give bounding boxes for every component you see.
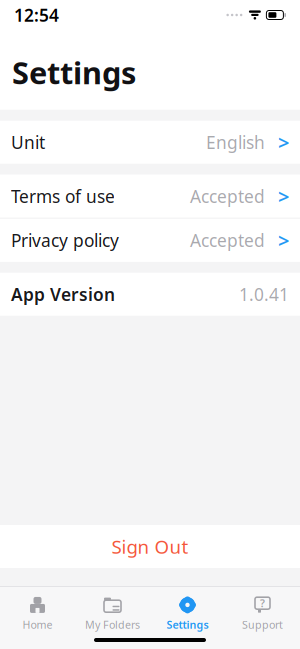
staticText: ?	[260, 596, 265, 610]
staticText: Support	[242, 617, 283, 632]
staticText: >	[278, 183, 289, 209]
button[interactable]: My Folders	[75, 595, 150, 633]
staticText: Privacy policy	[11, 229, 119, 252]
staticText: Terms of use	[11, 185, 115, 208]
staticText: Settings	[12, 52, 136, 93]
button[interactable]: ?	[225, 595, 300, 633]
staticText: 12:54	[14, 3, 59, 26]
staticText: Unit	[11, 131, 45, 154]
staticText: Home	[22, 617, 52, 632]
button[interactable]: Terms of use	[0, 175, 300, 218]
staticText: Accepted	[190, 229, 265, 252]
staticText: Sign Out	[111, 534, 188, 559]
staticText: Accepted	[190, 185, 265, 208]
staticText: My Folders	[85, 617, 140, 632]
button[interactable]: Settings	[150, 595, 225, 633]
staticText: Settings	[166, 617, 208, 632]
staticText: 1.0.41	[239, 283, 289, 306]
staticText: App Version	[11, 283, 115, 306]
button[interactable]: Privacy policy	[0, 219, 300, 262]
staticText: >	[278, 227, 289, 253]
button[interactable]: Home	[0, 595, 75, 633]
button[interactable]: Sign Out	[0, 525, 300, 568]
staticText: English	[206, 131, 265, 154]
staticText: >	[278, 129, 289, 155]
button[interactable]: Unit	[0, 121, 300, 164]
